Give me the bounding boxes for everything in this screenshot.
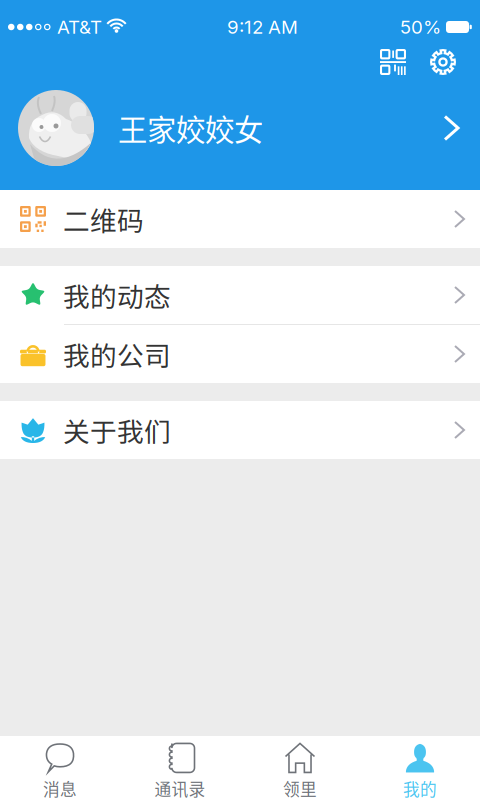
button[interactable]: Scan QR code xyxy=(374,43,412,81)
staticText: 领里 xyxy=(283,776,317,800)
staticText: AT&T xyxy=(57,16,102,38)
staticText: 通讯录 xyxy=(154,776,205,800)
button[interactable]: Settings xyxy=(424,43,462,81)
button[interactable]: 消息 xyxy=(0,736,120,800)
button[interactable]: 通讯录 xyxy=(120,736,240,800)
button[interactable]: 关于我们 xyxy=(0,401,480,459)
staticText: 我的 xyxy=(403,776,437,800)
button[interactable]: 王家姣姣女 xyxy=(0,81,480,175)
staticText: 二维码 xyxy=(63,200,144,238)
staticText: 消息 xyxy=(43,776,77,800)
button[interactable]: 二维码 xyxy=(0,190,480,248)
staticText: 9:12 AM xyxy=(227,16,298,38)
staticText: 我的动态 xyxy=(63,276,171,314)
staticText: 50% xyxy=(400,16,441,38)
button[interactable]: 我的 xyxy=(360,736,480,800)
button[interactable]: 我的公司 xyxy=(0,325,480,383)
staticText: 我的公司 xyxy=(63,335,171,373)
staticText: 王家姣姣女 xyxy=(118,107,263,149)
button[interactable]: 领里 xyxy=(240,736,360,800)
staticText: 关于我们 xyxy=(63,411,171,449)
button[interactable]: 我的动态 xyxy=(0,266,480,324)
